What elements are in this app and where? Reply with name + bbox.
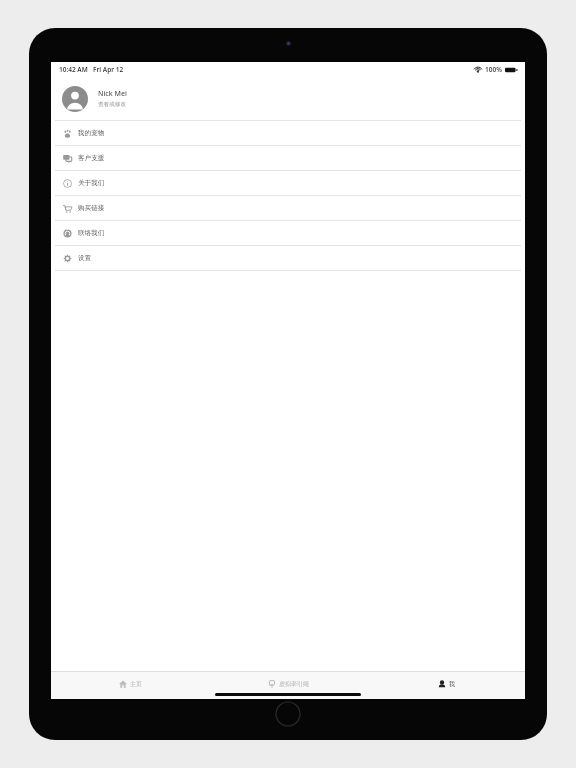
staticText: 查看或修改: [98, 101, 126, 108]
button[interactable]: 客户支援: [51, 146, 525, 170]
staticText: 虚拟牵引绳: [279, 680, 309, 688]
button[interactable]: 购买链接: [51, 196, 525, 220]
button[interactable]: 虚拟牵引绳: [209, 672, 367, 699]
staticText: 关于我们: [78, 179, 105, 187]
button[interactable]: 联络我们: [51, 221, 525, 245]
staticText: 我的宠物: [78, 129, 105, 137]
button[interactable]: 关于我们: [51, 171, 525, 195]
staticText: 购买链接: [78, 204, 105, 212]
staticText: 100%: [485, 65, 502, 74]
staticText: 客户支援: [78, 154, 105, 162]
staticText: 主页: [130, 680, 142, 688]
staticText: 我: [449, 680, 455, 688]
button[interactable]: 我: [367, 672, 525, 699]
button[interactable]: 设置: [51, 246, 525, 270]
staticText: 设置: [78, 254, 92, 262]
button[interactable]: Nick Mei: [51, 77, 525, 120]
staticText: 10:42 AM: [59, 65, 88, 74]
button[interactable]: 主页: [51, 672, 209, 699]
button[interactable]: 我的宠物: [51, 121, 525, 145]
staticText: Nick Mei: [98, 89, 127, 99]
staticText: 联络我们: [78, 229, 105, 237]
staticText: Fri Apr 12: [93, 65, 124, 74]
